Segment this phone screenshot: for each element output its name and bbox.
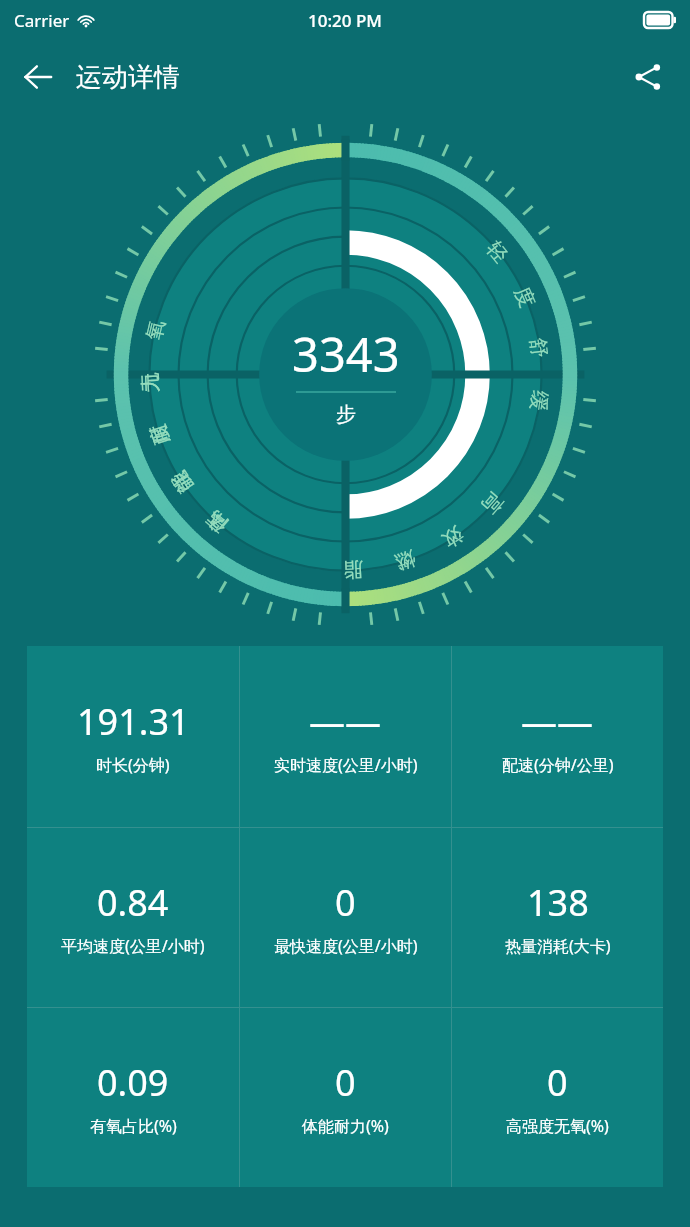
- staticText: 舒: [525, 336, 552, 359]
- staticText: 脂: [343, 556, 364, 582]
- staticText: 0.84: [97, 878, 169, 927]
- staticText: 度: [509, 283, 540, 311]
- staticText: 0.09: [97, 1058, 169, 1107]
- staticText: 氧: [141, 318, 170, 343]
- staticText: 热量消耗(大卡): [505, 935, 611, 957]
- staticText: 强: [167, 466, 199, 497]
- staticText: 0: [335, 1058, 356, 1107]
- staticText: 最快速度(公里/小时): [274, 935, 418, 957]
- button[interactable]: 0: [452, 1008, 663, 1187]
- staticText: ——: [309, 697, 382, 746]
- staticText: 燃: [392, 545, 419, 575]
- staticText: 高: [476, 487, 508, 519]
- staticText: 高: [201, 505, 233, 537]
- staticText: 时长(分钟): [96, 754, 170, 776]
- staticText: 体: [201, 505, 233, 537]
- staticText: ——: [521, 697, 594, 746]
- staticText: Carrier: [14, 9, 70, 32]
- staticText: 无: [138, 372, 163, 393]
- staticText: 高强度无氧(%): [506, 1115, 609, 1137]
- staticText: 度: [145, 421, 175, 448]
- staticText: 步: [336, 402, 356, 427]
- button[interactable]: 0.09: [27, 1008, 239, 1187]
- button[interactable]: 0: [240, 1008, 451, 1187]
- staticText: 有氧占比(%): [90, 1115, 177, 1137]
- staticText: 体能耐力(%): [302, 1115, 389, 1137]
- button[interactable]: 0.84: [27, 828, 239, 1007]
- staticText: 轻: [481, 236, 513, 268]
- staticText: 平均速度(公里/小时): [61, 935, 205, 957]
- staticText: 191.31: [77, 697, 190, 746]
- staticText: 耐: [145, 421, 175, 448]
- button[interactable]: 0: [240, 828, 451, 1007]
- button[interactable]: ——: [452, 646, 663, 827]
- staticText: 力: [138, 372, 163, 393]
- staticText: 运动详情: [76, 61, 180, 94]
- button[interactable]: Share: [616, 45, 680, 109]
- staticText: 效: [437, 521, 468, 553]
- staticText: 0: [335, 878, 356, 927]
- staticText: 0: [547, 1058, 568, 1107]
- staticText: 138: [527, 878, 589, 927]
- staticText: 能: [167, 466, 199, 497]
- staticText: 3343: [292, 322, 400, 386]
- button[interactable]: 138: [452, 828, 663, 1007]
- staticText: 10:20 PM: [308, 9, 382, 32]
- button[interactable]: ——: [240, 646, 451, 827]
- staticText: 缓: [525, 389, 552, 412]
- button[interactable]: 191.31: [27, 646, 239, 827]
- staticText: 配速(分钟/公里): [502, 754, 614, 776]
- staticText: 实时速度(公里/小时): [274, 754, 418, 776]
- button[interactable]: Back: [6, 45, 70, 109]
